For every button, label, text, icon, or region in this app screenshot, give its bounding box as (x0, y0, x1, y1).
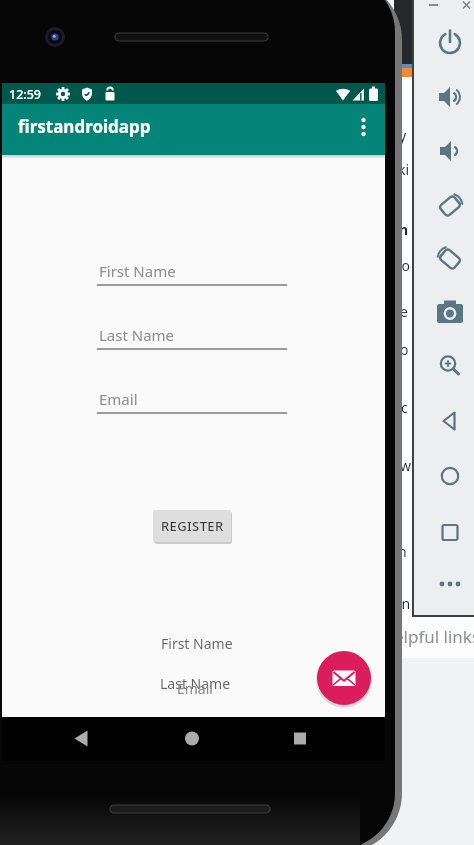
staticText: c (401, 398, 408, 417)
button[interactable] (432, 295, 468, 331)
staticText: ki (398, 160, 410, 179)
button[interactable] (432, 403, 468, 439)
staticText: Email (177, 679, 213, 698)
button[interactable]: REGISTER (153, 510, 231, 542)
button[interactable] (432, 456, 468, 492)
staticText: Last Name (99, 325, 175, 345)
staticText: REGISTER (161, 517, 224, 535)
button[interactable] (280, 720, 320, 760)
staticText: y (399, 126, 407, 145)
button[interactable] (432, 348, 468, 384)
staticText: First Name (99, 261, 176, 281)
button[interactable] (172, 720, 212, 760)
staticText: n (399, 220, 409, 239)
button[interactable] (432, 566, 468, 602)
staticText: elpful links (394, 625, 474, 648)
staticText: Last Name (160, 674, 231, 693)
staticText: io (398, 256, 411, 275)
button[interactable] (432, 133, 468, 169)
button[interactable] (432, 240, 468, 276)
staticText: w (400, 456, 412, 475)
button[interactable]: Last Name (97, 325, 287, 351)
staticText: 12:59 (9, 86, 42, 103)
button[interactable] (317, 651, 371, 705)
button[interactable]: Email (97, 389, 287, 415)
button[interactable] (61, 720, 101, 760)
staticText: First Name (161, 634, 233, 653)
button[interactable] (347, 113, 381, 147)
button[interactable]: First Name (97, 261, 287, 287)
button[interactable] (432, 79, 468, 115)
button[interactable] (432, 187, 468, 223)
staticText: e (400, 302, 408, 321)
button[interactable] (432, 25, 468, 61)
staticText: n (398, 542, 407, 561)
button[interactable] (432, 513, 468, 549)
staticText: o (400, 340, 409, 359)
staticText: firstandroidapp (18, 115, 151, 138)
staticText: Email (99, 389, 138, 409)
staticText: in (398, 594, 411, 613)
